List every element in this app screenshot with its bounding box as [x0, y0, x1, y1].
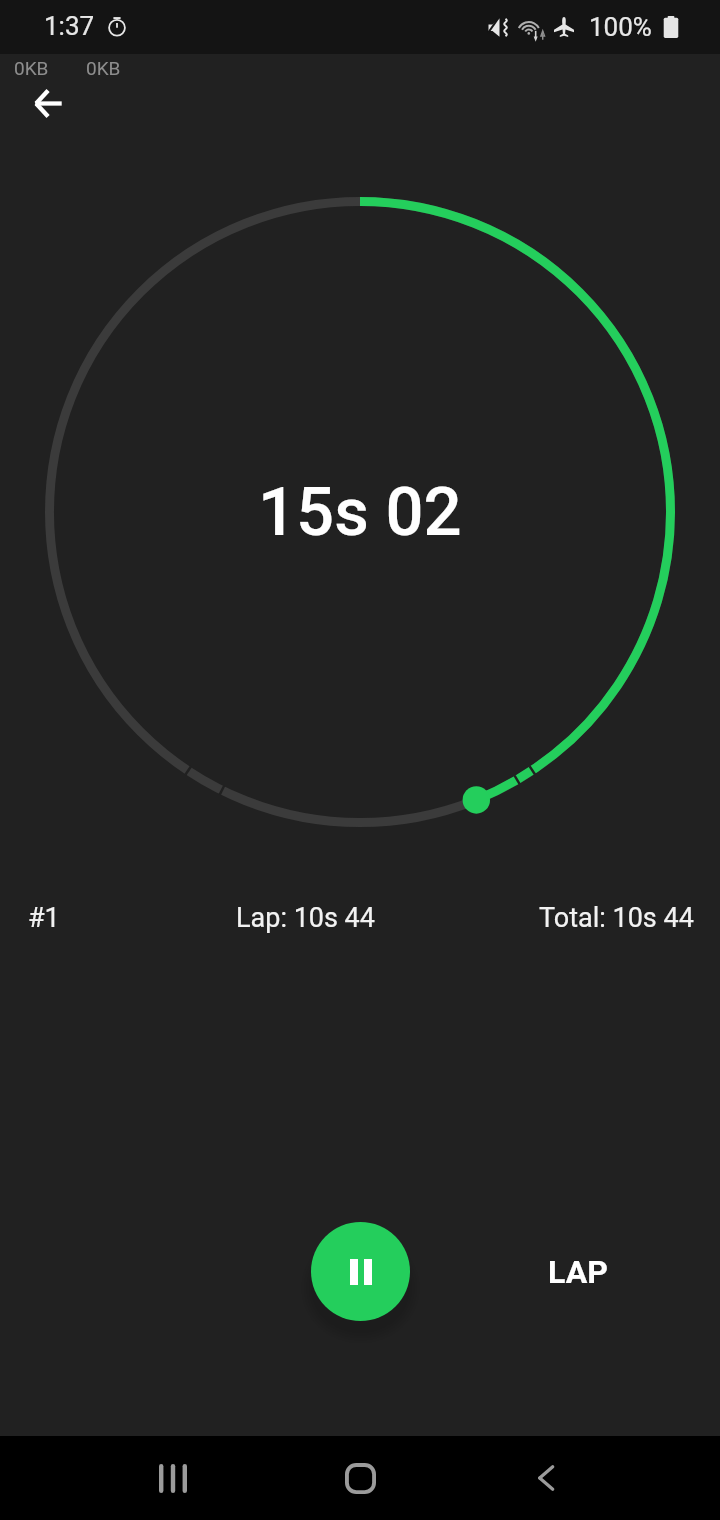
button[interactable]: Pause [311, 1222, 410, 1321]
staticText: 0KB [86, 57, 121, 79]
staticText: 0KB [14, 57, 49, 79]
staticText: #1 [28, 902, 60, 934]
staticText: Total: 10s 44 [539, 902, 694, 934]
button[interactable]: Recent apps [131, 1436, 215, 1520]
button[interactable]: LAP [510, 1232, 646, 1312]
staticText: 100% [589, 12, 652, 42]
staticText: LAP [548, 1253, 608, 1291]
staticText: 15s 02 [258, 473, 462, 552]
staticText: 1:37 [44, 11, 95, 41]
button[interactable]: Back [4, 60, 90, 146]
button[interactable]: Home [318, 1436, 402, 1520]
staticText: Lap: 10s 44 [236, 902, 375, 934]
button[interactable]: Back [505, 1436, 589, 1520]
